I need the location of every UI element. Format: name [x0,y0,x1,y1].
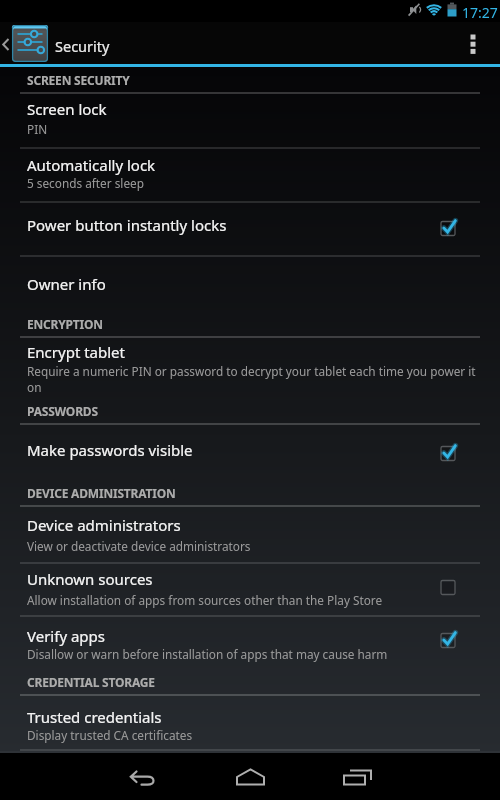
staticText: Security [55,36,110,56]
staticText: Disallow or warn before installation of … [27,646,388,662]
button[interactable]: Verify apps [0,615,500,670]
staticText: Device administrators [27,515,181,535]
staticText: Allow installation of apps from sources … [27,592,383,608]
button[interactable] [315,755,395,800]
staticText: Unknown sources [27,569,153,589]
button[interactable] [455,22,500,64]
staticText: CREDENTIAL STORAGE [27,674,155,690]
staticText: DEVICE ADMINISTRATION [27,485,176,501]
staticText: Screen lock [27,99,107,119]
button[interactable]: Device administrators [0,508,500,562]
staticText: PASSWORDS [27,403,98,419]
staticText: 5 seconds after sleep [27,175,144,191]
staticText: Power button instantly locks [27,215,227,235]
staticText: Display trusted CA certificates [27,727,193,743]
button[interactable]: Security [0,22,120,64]
button[interactable]: Screen lock [0,94,500,148]
staticText: on [27,379,42,395]
button[interactable] [210,755,290,800]
button[interactable]: Trusted credentials [0,697,500,749]
staticText: PIN [27,121,48,137]
button[interactable]: Make passwords visible [0,426,500,482]
button[interactable]: Owner info [0,256,500,313]
staticText: ENCRYPTION [27,316,103,332]
button[interactable] [105,755,185,800]
staticText: View or deactivate device administrators [27,538,251,554]
staticText: SCREEN SECURITY [27,72,130,88]
staticText: Make passwords visible [27,440,193,460]
button[interactable]: Unknown sources [0,562,500,615]
staticText: Require a numeric PIN or password to dec… [27,363,476,379]
staticText: Encrypt tablet [27,342,125,362]
staticText: Automatically lock [27,155,156,175]
button[interactable]: Automatically lock [0,148,500,202]
staticText: Trusted credentials [27,707,162,727]
staticText: 17:27 [462,3,498,22]
button[interactable]: Power button instantly locks [0,202,500,255]
staticText: Owner info [27,274,106,294]
button[interactable]: Encrypt tablet [0,338,500,401]
staticText: Verify apps [27,626,105,646]
